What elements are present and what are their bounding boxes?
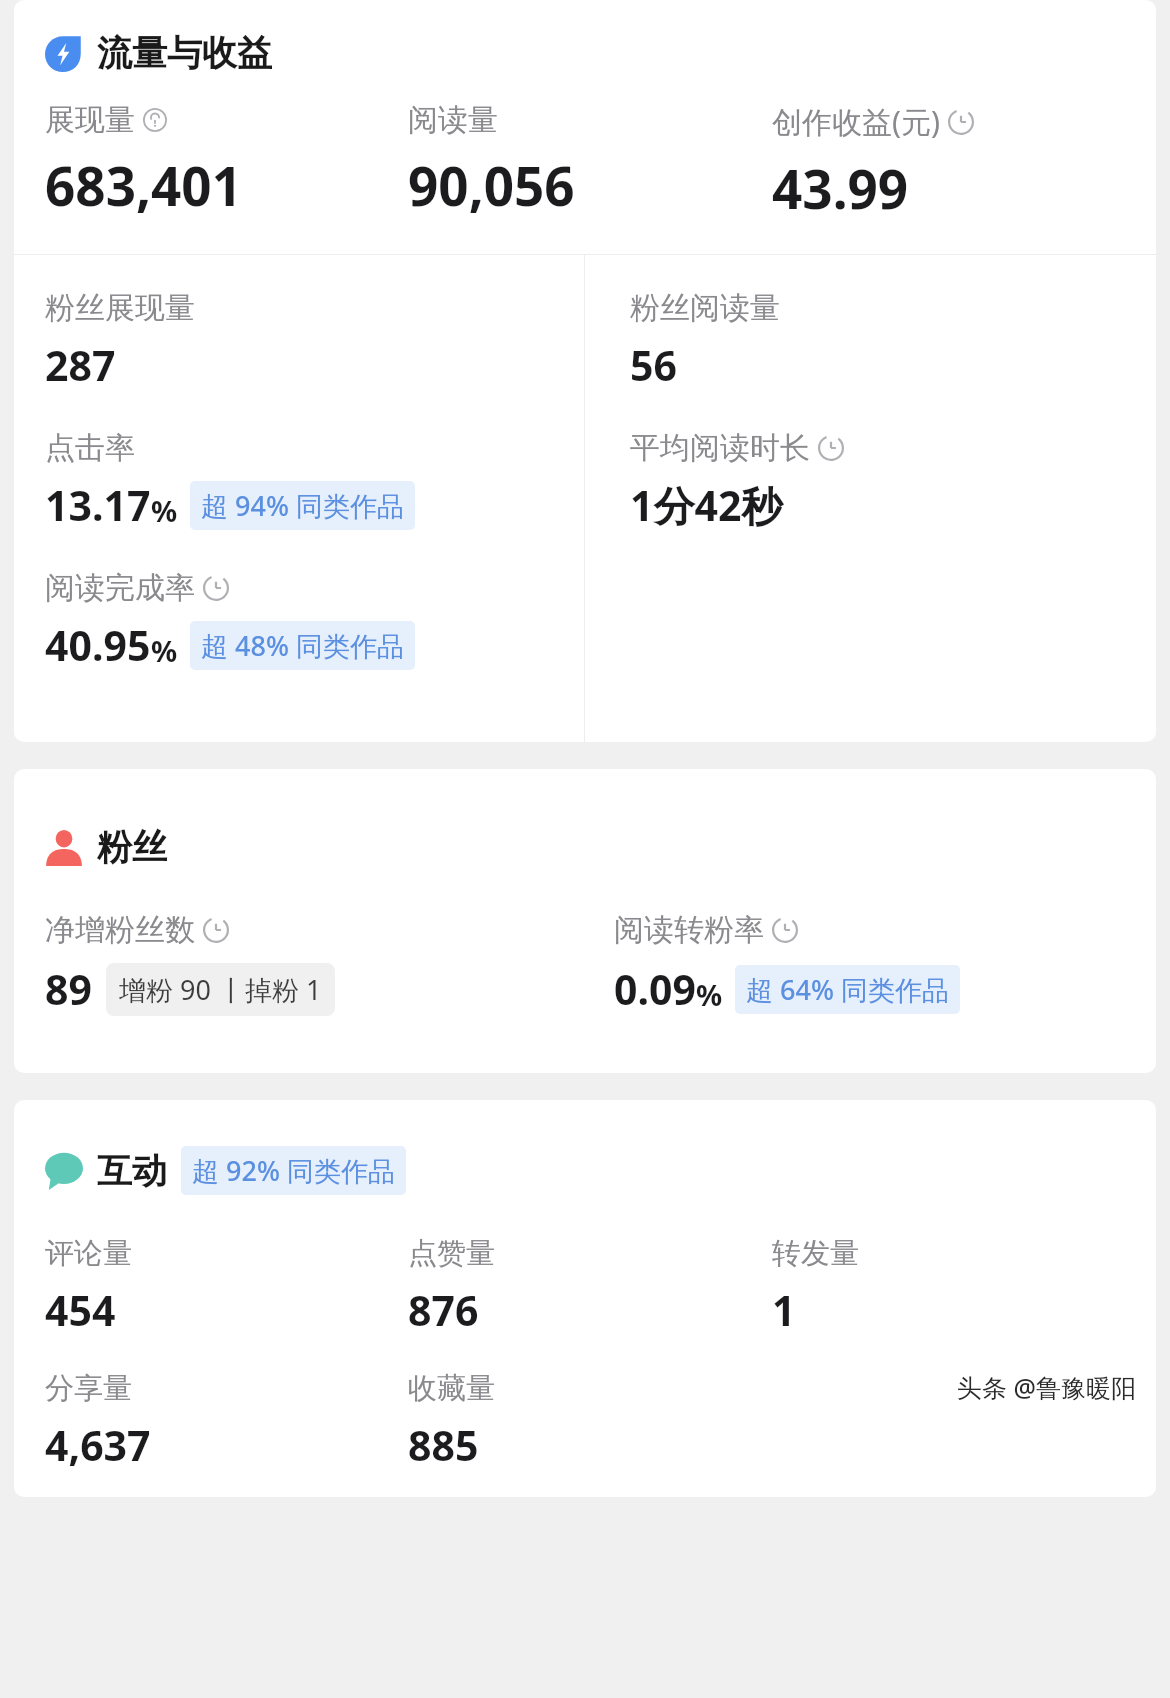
staticText: 阅读量 bbox=[408, 101, 498, 139]
staticText: 点赞量 bbox=[408, 1235, 495, 1272]
button[interactable]: 互动 bbox=[14, 1146, 1156, 1195]
staticText: 1分42秒 bbox=[630, 477, 783, 533]
staticText: 超 64% 同类作品 bbox=[746, 971, 949, 1008]
staticText: 展现量 bbox=[45, 101, 135, 139]
staticText: 89 bbox=[45, 961, 92, 1017]
button[interactable]: 转发量 bbox=[772, 1235, 1136, 1338]
staticText: 1 bbox=[772, 1282, 796, 1338]
staticText: 超 94% 同类作品 bbox=[201, 487, 404, 524]
staticText: 粉丝阅读量 bbox=[630, 289, 780, 327]
staticText: 43.99 bbox=[772, 152, 909, 224]
button[interactable]: 流量与收益 bbox=[14, 31, 1156, 75]
staticText: 40.95 bbox=[45, 617, 151, 673]
staticText: 454 bbox=[45, 1282, 116, 1338]
button[interactable]: 阅读完成率 bbox=[45, 569, 415, 673]
button[interactable]: 评论量 bbox=[45, 1235, 408, 1338]
other: 互动 bbox=[45, 1152, 83, 1190]
staticText: 超 48% 同类作品 bbox=[201, 627, 404, 664]
staticText: 平均阅读时长 bbox=[630, 429, 810, 467]
staticText: % bbox=[696, 975, 723, 1014]
staticText: 90,056 bbox=[408, 149, 575, 221]
staticText: 净增粉丝数 bbox=[45, 911, 195, 949]
staticText: 13.17 bbox=[45, 477, 151, 533]
staticText: 收藏量 bbox=[408, 1370, 495, 1407]
staticText: 点击率 bbox=[45, 429, 135, 467]
staticText: 阅读完成率 bbox=[45, 569, 195, 607]
button[interactable]: 超 92% 同类作品 bbox=[181, 1146, 406, 1195]
staticText: 876 bbox=[408, 1282, 479, 1338]
button[interactable]: 展现量 bbox=[45, 101, 408, 221]
button[interactable]: 分享量 bbox=[45, 1370, 408, 1473]
staticText: % bbox=[151, 631, 178, 670]
button[interactable]: 超 64% 同类作品 bbox=[735, 965, 960, 1014]
staticText: 头条 @鲁豫暖阳 bbox=[957, 1370, 1136, 1404]
button[interactable]: 粉丝阅读量 bbox=[630, 289, 780, 393]
staticText: 流量与收益 bbox=[97, 31, 272, 75]
button[interactable]: 超 94% 同类作品 bbox=[190, 481, 415, 530]
staticText: 4,637 bbox=[45, 1417, 151, 1473]
button[interactable]: 粉丝 bbox=[14, 825, 1156, 869]
other: 粉丝 bbox=[45, 828, 83, 866]
button[interactable]: 点赞量 bbox=[408, 1235, 772, 1338]
staticText: 0.09 bbox=[614, 961, 696, 1017]
staticText: 287 bbox=[45, 337, 116, 393]
staticText: 885 bbox=[408, 1417, 479, 1473]
staticText: 阅读转粉率 bbox=[614, 911, 764, 949]
button[interactable]: 点击率 bbox=[45, 429, 415, 533]
button[interactable]: 创作收益(元) bbox=[772, 101, 1136, 224]
staticText: 转发量 bbox=[772, 1235, 859, 1272]
button[interactable]: 超 48% 同类作品 bbox=[190, 621, 415, 670]
button[interactable]: 阅读量 bbox=[408, 101, 772, 221]
button[interactable]: 收藏量 bbox=[408, 1370, 772, 1473]
staticText: 互动 bbox=[97, 1149, 167, 1193]
staticText: 粉丝 bbox=[97, 825, 167, 869]
staticText: 分享量 bbox=[45, 1370, 132, 1407]
button[interactable]: 粉丝展现量 bbox=[45, 289, 195, 393]
staticText: 超 92% 同类作品 bbox=[192, 1152, 395, 1189]
staticText: 增粉 90 丨掉粉 1 bbox=[119, 971, 322, 1008]
button[interactable]: 增粉 90 丨掉粉 1 bbox=[106, 963, 335, 1016]
staticText: 创作收益(元) bbox=[772, 101, 940, 142]
staticText: 粉丝展现量 bbox=[45, 289, 195, 327]
staticText: 56 bbox=[630, 337, 677, 393]
other: 流量与收益 bbox=[45, 34, 83, 72]
staticText: 评论量 bbox=[45, 1235, 132, 1272]
staticText: 683,401 bbox=[45, 149, 243, 221]
button[interactable]: 平均阅读时长 bbox=[630, 429, 844, 533]
staticText: % bbox=[151, 491, 178, 530]
